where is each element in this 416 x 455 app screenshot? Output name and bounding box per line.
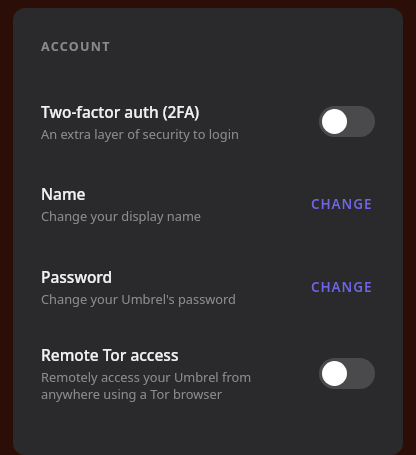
button[interactable]: CHANGE <box>309 191 375 217</box>
button[interactable]: Remote Tor access <box>13 342 403 404</box>
staticText: Password <box>41 266 113 287</box>
staticText: anywhere using a Tor browser <box>41 385 222 402</box>
staticText: Change your display name <box>41 207 202 224</box>
button[interactable]: Toggle remote Tor access <box>319 358 375 389</box>
button[interactable]: Password <box>13 264 403 309</box>
staticText: Name <box>41 183 86 204</box>
staticText: ACCOUNT <box>41 38 111 55</box>
button[interactable]: CHANGE <box>309 274 375 300</box>
staticText: An extra layer of security to login <box>41 125 239 142</box>
button[interactable]: Name <box>13 181 403 226</box>
button[interactable]: Toggle two-factor authentication <box>319 106 375 137</box>
staticText: Change your Umbrel's password <box>41 290 236 307</box>
staticText: CHANGE <box>311 278 373 296</box>
staticText: Remote Tor access <box>41 344 179 365</box>
button[interactable]: Two-factor auth (2FA) <box>13 99 403 144</box>
staticText: Two-factor auth (2FA) <box>41 101 200 122</box>
staticText: Remotely access your Umbrel from <box>41 368 252 385</box>
staticText: CHANGE <box>311 195 373 213</box>
